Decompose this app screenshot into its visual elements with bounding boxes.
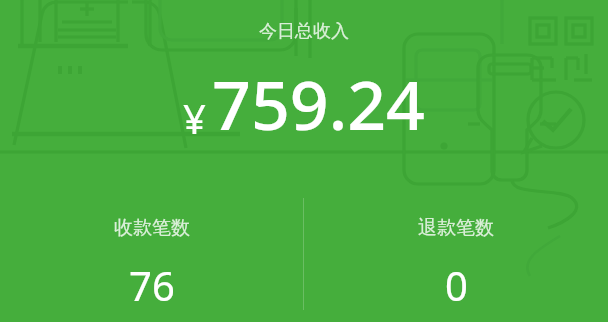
button[interactable]: 退款笔数 bbox=[304, 198, 608, 310]
button[interactable]: 收款笔数 bbox=[0, 198, 303, 310]
staticText: 759.24 bbox=[212, 57, 425, 150]
staticText: 今日总收入 bbox=[259, 20, 349, 43]
staticText: 76 bbox=[129, 258, 175, 310]
staticText: ¥ bbox=[183, 91, 206, 145]
staticText: 0 bbox=[445, 258, 468, 310]
staticText: 退款笔数 bbox=[418, 216, 494, 240]
staticText: 收款笔数 bbox=[114, 216, 190, 240]
